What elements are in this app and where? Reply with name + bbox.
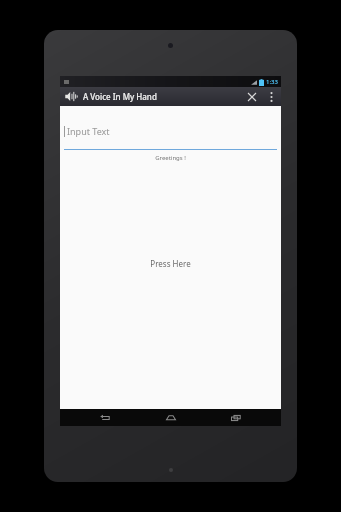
button[interactable]: Home — [151, 409, 191, 426]
staticText: Input Text — [67, 125, 110, 137]
staticText: A Voice In My Hand — [83, 91, 157, 102]
button[interactable]: Recents — [216, 409, 256, 426]
staticText: 1:33 — [266, 78, 278, 86]
button[interactable]: Back — [85, 409, 125, 426]
button[interactable]: Close — [241, 87, 263, 106]
staticText: Press Here — [150, 258, 191, 269]
staticText: Greetings ! — [60, 154, 281, 162]
button[interactable]: Input Text — [64, 119, 277, 143]
button[interactable]: More options — [263, 87, 279, 106]
button[interactable]: Press Here — [60, 258, 281, 269]
